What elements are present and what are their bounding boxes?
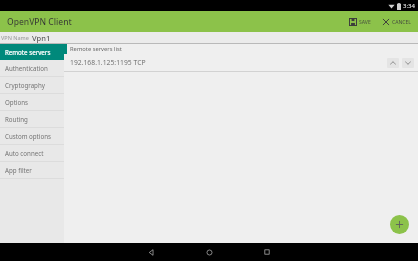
- button[interactable]: Cryptography: [0, 77, 64, 93]
- button[interactable]: Add server: [390, 215, 409, 234]
- staticText: VPN Name: [1, 34, 29, 41]
- staticText: Authentication: [5, 64, 48, 72]
- staticText: 192.168.1.125:1195 TCP: [70, 58, 387, 67]
- staticText: 3:34: [403, 2, 415, 10]
- staticText: App filter: [5, 166, 32, 174]
- button[interactable]: Back: [136, 243, 166, 261]
- staticText: Routing: [5, 115, 28, 123]
- button[interactable]: Move down: [402, 58, 414, 68]
- button[interactable]: Options: [0, 94, 64, 110]
- staticText: SAVE: [359, 19, 371, 26]
- button[interactable]: SAVE: [347, 16, 373, 28]
- button[interactable]: Custom options: [0, 128, 64, 144]
- button[interactable]: 192.168.1.125:1195 TCP: [64, 54, 418, 71]
- button[interactable]: App filter: [0, 162, 64, 178]
- staticText: Cryptography: [5, 81, 45, 89]
- staticText: OpenVPN Client: [7, 16, 72, 28]
- button[interactable]: VPN Name: [0, 32, 418, 43]
- staticText: Auto connect: [5, 149, 44, 157]
- staticText: Remote servers: [5, 48, 51, 56]
- button[interactable]: Authentication: [0, 60, 64, 76]
- staticText: Vpn1: [32, 33, 51, 43]
- button[interactable]: Remote servers: [0, 44, 64, 60]
- staticText: Options: [5, 98, 28, 106]
- button[interactable]: Recents: [252, 243, 282, 261]
- staticText: CANCEL: [392, 19, 411, 26]
- button[interactable]: Routing: [0, 111, 64, 127]
- button[interactable]: CANCEL: [380, 16, 413, 28]
- staticText: Custom options: [5, 132, 51, 140]
- button[interactable]: Move up: [387, 58, 399, 68]
- staticText: Remote servers list: [70, 45, 122, 53]
- button[interactable]: Home: [194, 243, 224, 261]
- button[interactable]: Auto connect: [0, 145, 64, 161]
